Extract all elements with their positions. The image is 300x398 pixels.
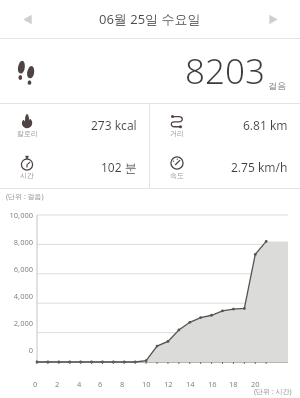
staticText: 4 (77, 379, 82, 389)
button[interactable]: Speed (150, 146, 300, 188)
staticText: 273 kcal (91, 117, 137, 133)
staticText: 102 분 (101, 159, 137, 175)
staticText: 18 (229, 379, 238, 389)
staticText: 16 (208, 379, 217, 389)
button[interactable]: Calories (0, 104, 149, 146)
button[interactable]: Hourly step chart (0, 189, 300, 398)
staticText: 8 (120, 379, 125, 389)
button[interactable]: Next day (256, 2, 290, 36)
staticText: 14 (186, 379, 195, 389)
other: Calories (11, 113, 43, 138)
staticText: 2.75 km/h (231, 159, 288, 175)
staticText: 시간 (20, 171, 34, 180)
staticText: 0 (33, 379, 38, 389)
staticText: 8,000 (0, 237, 33, 247)
staticText: 10 (142, 379, 151, 389)
staticText: 4,000 (0, 291, 33, 301)
button[interactable]: Time (0, 146, 149, 188)
staticText: 6 (98, 379, 103, 389)
staticText: 6.81 km (243, 117, 288, 133)
staticText: 6,000 (0, 264, 33, 274)
staticText: 거리 (170, 129, 184, 138)
staticText: 8203 (185, 47, 265, 95)
staticText: 2 (55, 379, 60, 389)
button[interactable]: 8203 (0, 39, 300, 103)
other: Speed (161, 155, 193, 180)
staticText: 2,000 (0, 318, 33, 328)
staticText: 12 (164, 379, 173, 389)
staticText: 0 (0, 345, 33, 355)
staticText: 속도 (170, 171, 184, 180)
other: Time (11, 155, 43, 180)
button[interactable]: Distance (150, 104, 300, 146)
staticText: (단위 : 걸음) (6, 192, 44, 202)
staticText: 10,000 (0, 210, 33, 220)
staticText: 06월 25일 수요일 (99, 10, 201, 28)
button[interactable]: Previous day (10, 2, 44, 36)
staticText: 20 (251, 379, 260, 389)
staticText: (단위 : 시간) (254, 387, 292, 397)
other: Distance (161, 113, 193, 138)
staticText: 칼로리 (17, 129, 38, 138)
staticText: 걸음 (268, 80, 286, 91)
